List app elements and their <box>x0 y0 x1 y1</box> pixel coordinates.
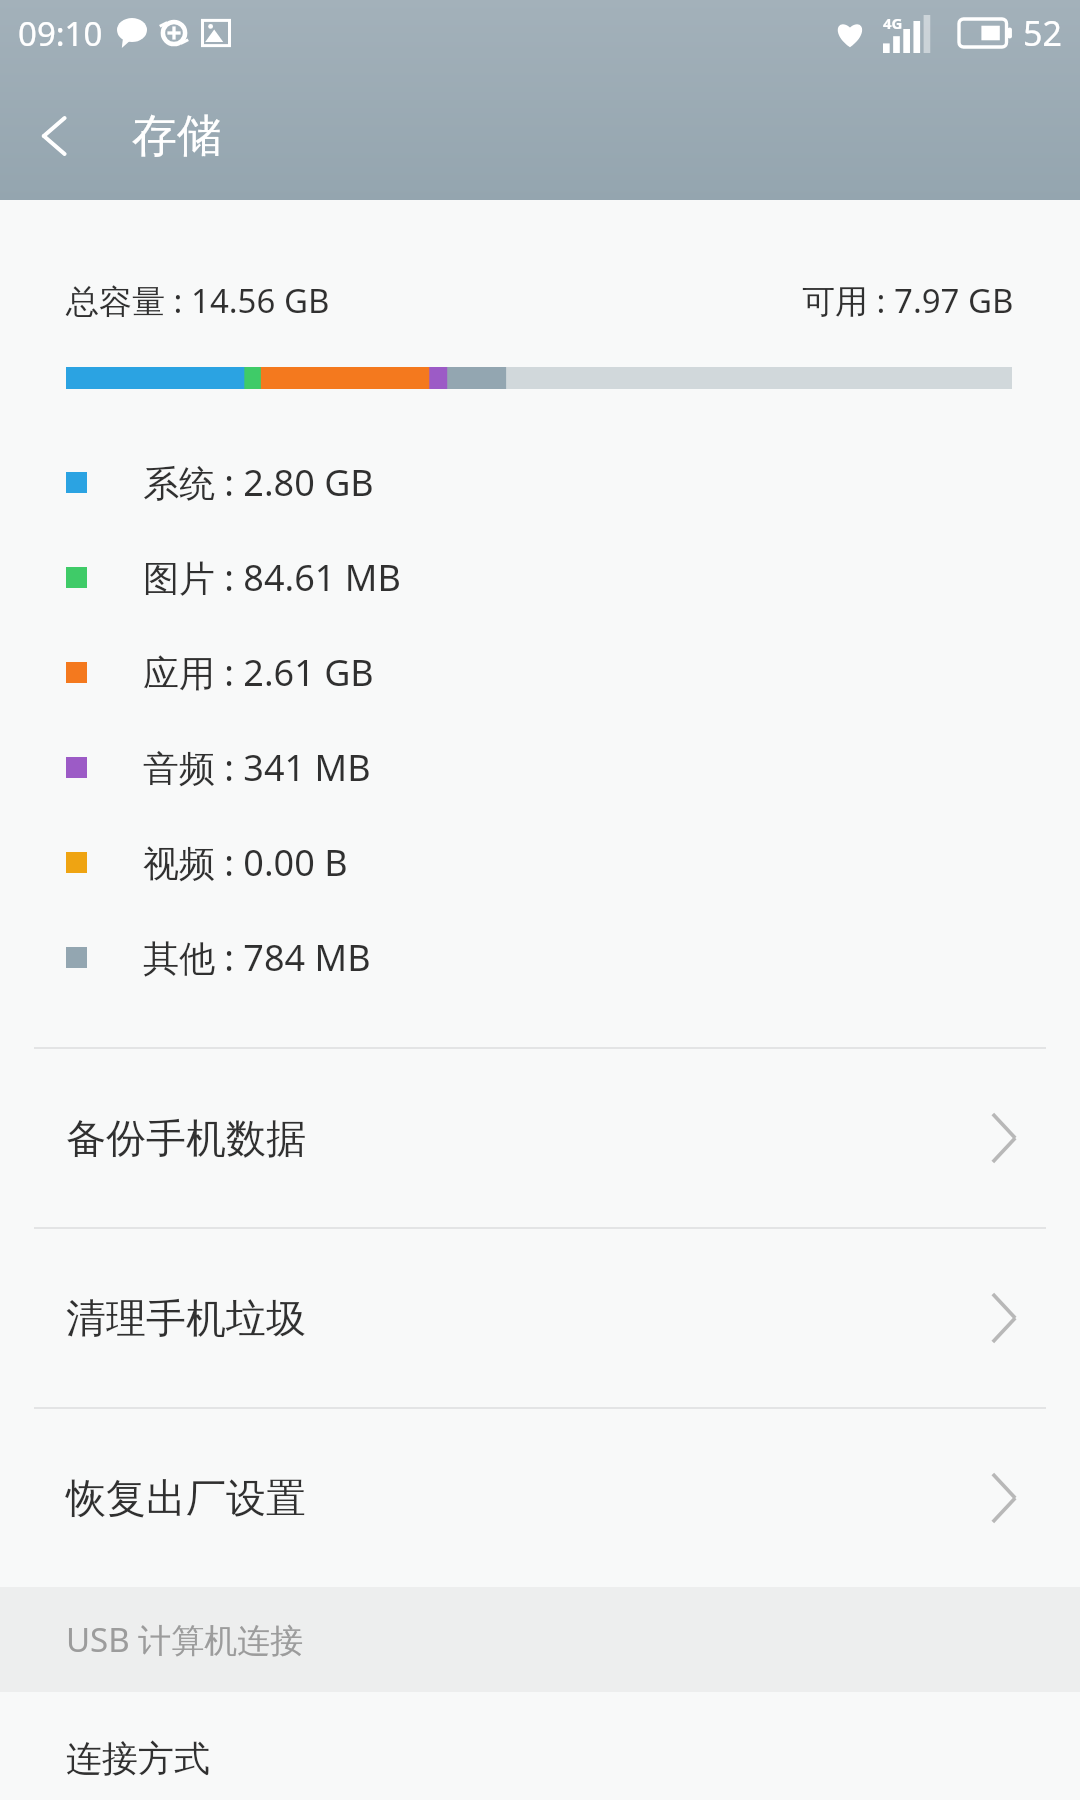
button[interactable]: 恢复出厂设置 <box>0 1409 1080 1587</box>
staticText: 图片 : 84.61 MB <box>143 553 401 602</box>
staticText: 09:10 <box>18 11 103 56</box>
staticText: 系统 : 2.80 GB <box>143 458 374 507</box>
button[interactable]: USB 计算机连接 <box>0 1587 1080 1692</box>
button[interactable]: 其他 : 784 MB <box>0 910 1080 1005</box>
button[interactable]: 音频 : 341 MB <box>0 720 1080 815</box>
staticText: 应用 : 2.61 GB <box>143 648 374 697</box>
button[interactable]: 系统 : 2.80 GB <box>0 435 1080 530</box>
staticText: 52 <box>1023 10 1062 56</box>
staticText: USB 计算机连接 <box>66 1617 304 1662</box>
staticText: 恢复出厂设置 <box>66 1473 306 1523</box>
staticText: 音频 : 341 MB <box>143 743 371 792</box>
button[interactable]: 图片 : 84.61 MB <box>0 530 1080 625</box>
staticText: 可用 : 7.97 GB <box>802 278 1014 323</box>
staticText: 备份手机数据 <box>66 1113 306 1163</box>
staticText: 4G <box>883 13 903 33</box>
staticText: 总容量 : 14.56 GB <box>66 278 330 323</box>
staticText: 连接方式 <box>66 1736 210 1781</box>
staticText: 存储 <box>132 108 222 165</box>
staticText: 视频 : 0.00 B <box>143 838 348 887</box>
button[interactable]: 应用 : 2.61 GB <box>0 625 1080 720</box>
button[interactable]: 备份手机数据 <box>0 1049 1080 1227</box>
button[interactable]: 清理手机垃圾 <box>0 1229 1080 1407</box>
button[interactable]: 视频 : 0.00 B <box>0 815 1080 910</box>
staticText: 其他 : 784 MB <box>143 933 371 982</box>
button[interactable]: Back <box>0 81 110 191</box>
staticText: 清理手机垃圾 <box>66 1293 306 1343</box>
